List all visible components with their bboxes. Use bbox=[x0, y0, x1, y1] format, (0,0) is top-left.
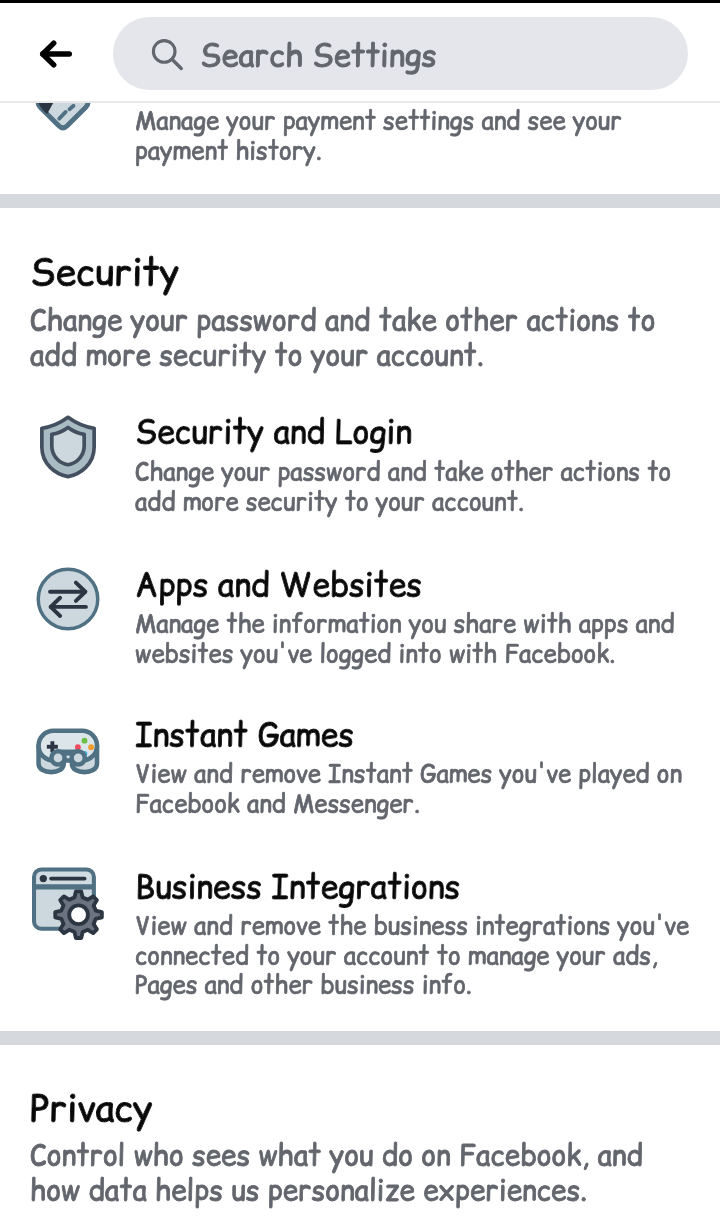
staticText: websites you've logged into with Faceboo… bbox=[135, 637, 616, 670]
staticText: payment history. bbox=[135, 134, 322, 167]
staticText: Change your password and take other acti… bbox=[135, 455, 672, 488]
button[interactable]: Search Settings bbox=[113, 17, 688, 90]
staticText: Security bbox=[30, 246, 180, 298]
button[interactable]: Back bbox=[0, 3, 104, 101]
staticText: how data helps us personalize experience… bbox=[30, 1170, 587, 1209]
staticText: Apps and Websites bbox=[135, 562, 422, 607]
staticText: Security and Login bbox=[135, 409, 413, 454]
staticText: Business Integrations bbox=[135, 864, 461, 909]
staticText: Business Integrations bbox=[135, 864, 461, 909]
staticText: connected to your account to manage your… bbox=[135, 939, 658, 972]
staticText: Apps and Websites bbox=[135, 562, 422, 607]
staticText: View and remove the business integration… bbox=[135, 909, 690, 942]
staticText: Security and Login bbox=[135, 409, 413, 454]
staticText: how data helps us personalize experience… bbox=[30, 1170, 587, 1209]
staticText: View and remove Instant Games you've pla… bbox=[135, 757, 683, 790]
staticText: Security bbox=[30, 246, 180, 298]
staticText: Instant Games bbox=[135, 712, 354, 757]
staticText: Change your password and take other acti… bbox=[135, 455, 672, 488]
button[interactable] bbox=[0, 404, 720, 532]
button[interactable] bbox=[0, 706, 720, 834]
button[interactable] bbox=[0, 858, 720, 1016]
button[interactable] bbox=[0, 556, 720, 684]
staticText: Change your password and take other acti… bbox=[30, 300, 656, 339]
staticText: add more security to your account. bbox=[135, 485, 524, 518]
staticText: Manage the information you share with ap… bbox=[135, 607, 675, 640]
staticText: Manage your payment settings and see you… bbox=[135, 104, 622, 137]
staticText: Instant Games bbox=[135, 712, 354, 757]
staticText: Manage the information you share with ap… bbox=[135, 607, 675, 640]
staticText: add more security to your account. bbox=[30, 335, 484, 374]
staticText: connected to your account to manage your… bbox=[135, 939, 658, 972]
staticText: Search Settings bbox=[200, 33, 437, 76]
staticText: add more security to your account. bbox=[135, 485, 524, 518]
staticText: Privacy bbox=[30, 1082, 153, 1134]
staticText: View and remove Instant Games you've pla… bbox=[135, 757, 683, 790]
staticText: add more security to your account. bbox=[30, 335, 484, 374]
staticText: Pages and other business info. bbox=[135, 968, 472, 1001]
staticText: Facebook and Messenger. bbox=[135, 787, 420, 820]
staticText: Pages and other business info. bbox=[135, 968, 472, 1001]
staticText: Control who sees what you do on Facebook… bbox=[30, 1135, 643, 1174]
staticText: Control who sees what you do on Facebook… bbox=[30, 1135, 643, 1174]
staticText: Change your password and take other acti… bbox=[30, 300, 656, 339]
staticText: Manage your payment settings and see you… bbox=[135, 104, 622, 137]
staticText: View and remove the business integration… bbox=[135, 909, 690, 942]
staticText: Search Settings bbox=[200, 33, 437, 76]
staticText: Privacy bbox=[30, 1082, 153, 1134]
button[interactable] bbox=[0, 102, 720, 194]
staticText: Facebook and Messenger. bbox=[135, 787, 420, 820]
staticText: websites you've logged into with Faceboo… bbox=[135, 637, 616, 670]
staticText: payment history. bbox=[135, 134, 322, 167]
